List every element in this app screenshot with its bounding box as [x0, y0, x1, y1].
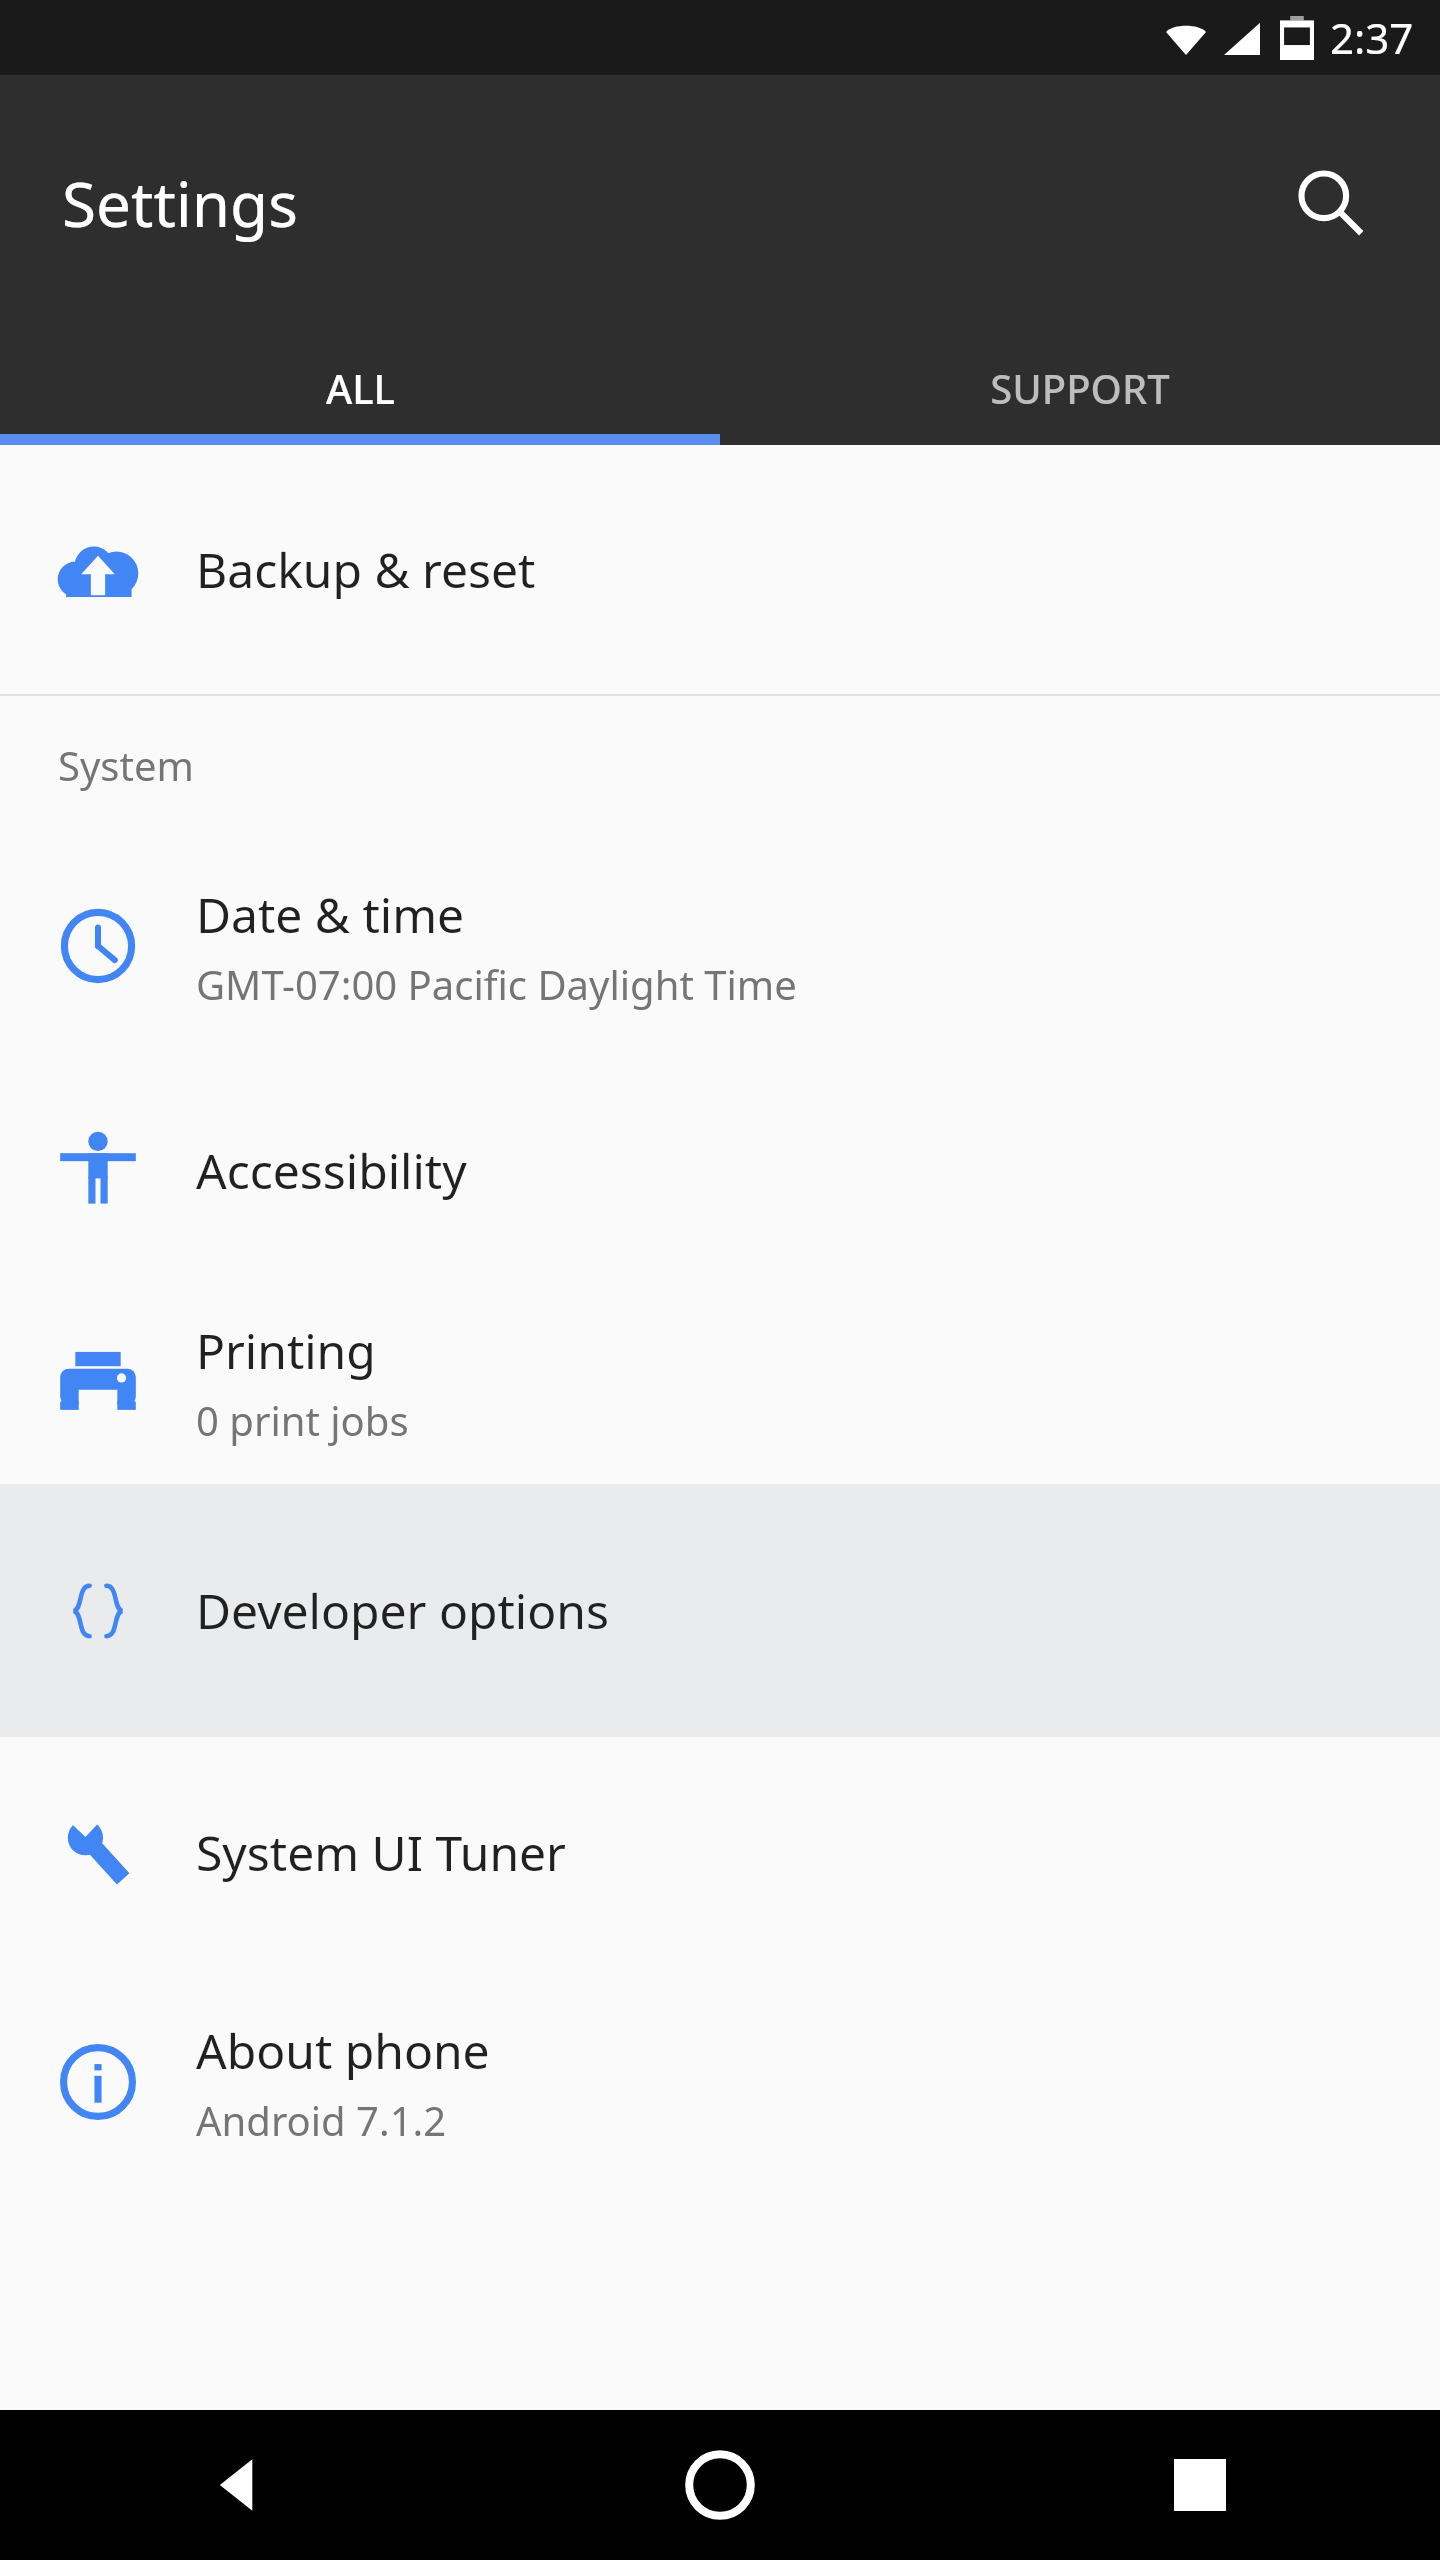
button[interactable]: Accessibility: [0, 1059, 1440, 1281]
staticText: GMT-07:00 Pacific Daylight Time: [196, 957, 797, 1011]
staticText: System UI Tuner: [196, 1820, 566, 1885]
staticText: Android 7.1.2: [196, 2093, 447, 2147]
button[interactable]: Back: [0, 2410, 480, 2560]
staticText: 2:37: [1330, 9, 1414, 66]
button[interactable]: Printing: [0, 1281, 1440, 1484]
button[interactable]: Recent apps: [960, 2410, 1440, 2560]
button[interactable]: Home: [480, 2410, 960, 2560]
staticText: ALL: [326, 361, 395, 415]
staticText: Date & time: [196, 882, 465, 947]
staticText: Backup & reset: [196, 537, 536, 602]
button[interactable]: Developer options: [0, 1484, 1440, 1737]
button[interactable]: Search: [1266, 138, 1396, 268]
staticText: 0 print jobs: [196, 1393, 409, 1447]
staticText: SUPPORT: [990, 361, 1170, 415]
staticText: Accessibility: [196, 1138, 467, 1203]
staticText: Developer options: [196, 1578, 609, 1643]
button[interactable]: ALL: [0, 330, 720, 445]
button[interactable]: About phone: [0, 1967, 1440, 2197]
button[interactable]: System UI Tuner: [0, 1737, 1440, 1967]
staticText: System: [58, 738, 194, 792]
staticText: About phone: [196, 2018, 490, 2083]
button[interactable]: Backup & reset: [0, 445, 1440, 694]
staticText: Settings: [62, 161, 298, 245]
staticText: Printing: [196, 1318, 376, 1383]
button[interactable]: Date & time: [0, 833, 1440, 1059]
button[interactable]: SUPPORT: [720, 330, 1440, 445]
